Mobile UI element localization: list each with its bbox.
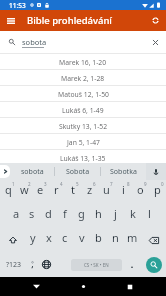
button[interactable]: Marek 16, 1-20 [0, 54, 166, 70]
staticText: Marek 2, 1-28 [61, 74, 105, 83]
staticText: Matouš 12, 1-50 [58, 90, 109, 99]
staticText: f [63, 206, 67, 221]
staticText: Bible prohledávání [27, 14, 112, 27]
staticText: sobota [22, 37, 47, 47]
staticText: Sobotka [110, 167, 137, 177]
staticText: w [20, 182, 29, 197]
staticText: l [148, 206, 151, 221]
button[interactable]: a [8, 204, 24, 228]
button[interactable]: k [124, 204, 141, 228]
button[interactable]: Clear search [144, 31, 166, 53]
button[interactable]: Marek 2, 1-28 [0, 70, 166, 86]
button[interactable]: s [24, 204, 40, 228]
staticText: c [62, 230, 68, 245]
button[interactable]: j [107, 204, 124, 228]
button[interactable]: x [41, 228, 57, 252]
button[interactable]: Backspace [141, 228, 166, 252]
staticText: n [112, 230, 119, 245]
button[interactable]: Matouš 12, 1-50 [0, 86, 166, 102]
button[interactable] [27, 252, 37, 277]
button[interactable]: q [0, 180, 16, 204]
staticText: sobota [21, 167, 44, 177]
staticText: x [46, 230, 52, 245]
staticText: Skutky 13, 1-52 [59, 122, 108, 131]
staticText: CS • SK • EN [84, 262, 109, 268]
button[interactable]: CS • SK • EN [71, 259, 122, 271]
staticText: 1 [12, 181, 15, 187]
button[interactable] [122, 252, 142, 277]
button[interactable]: Refresh [145, 10, 166, 31]
staticText: i [122, 182, 125, 197]
button[interactable]: v [73, 228, 90, 252]
button[interactable]: Lukáš 6, 1-49 [0, 102, 166, 118]
staticText: d [45, 206, 52, 221]
staticText: 9 [144, 181, 147, 187]
staticText: 11:53 [9, 1, 26, 10]
button[interactable]: t [64, 180, 81, 204]
button[interactable]: i [115, 180, 132, 204]
staticText: Jan 5, 1-47 [67, 138, 100, 147]
button[interactable]: Recent apps [120, 277, 139, 296]
staticText: 7 [110, 181, 113, 187]
staticText: 8 [127, 181, 130, 187]
button[interactable]: Sobotka [101, 163, 146, 180]
button[interactable]: Back [27, 277, 46, 296]
staticText: h [95, 206, 102, 221]
button[interactable]: c [57, 228, 73, 252]
button[interactable]: g [73, 204, 90, 228]
staticText: e [37, 182, 44, 197]
staticText: 3 [44, 181, 47, 187]
staticText: m [127, 230, 138, 245]
staticText: z [87, 182, 93, 197]
button[interactable]: d [40, 204, 56, 228]
button[interactable]: u [98, 180, 115, 204]
button[interactable]: Home [74, 277, 93, 296]
staticText: q [5, 182, 12, 197]
button[interactable]: h [90, 204, 107, 228]
staticText: ?123 [6, 260, 22, 270]
staticText: b [95, 230, 102, 245]
staticText: Lukáš 6, 1-49 [62, 106, 104, 115]
button[interactable]: f [56, 204, 73, 228]
staticText: u [103, 182, 110, 197]
button[interactable]: Voice input [146, 163, 166, 180]
button[interactable]: l [141, 204, 158, 228]
button[interactable]: Navigation menu [0, 10, 21, 31]
button[interactable]: Skutky 13, 1-52 [0, 118, 166, 134]
button[interactable]: Shift [0, 228, 25, 252]
button[interactable]: n [107, 228, 124, 252]
staticText: r [54, 182, 59, 197]
button[interactable]: p [149, 180, 166, 204]
staticText: p [154, 182, 161, 197]
staticText: o [137, 182, 144, 197]
staticText: a [13, 206, 20, 221]
button[interactable]: w [16, 180, 32, 204]
staticText: j [114, 206, 117, 221]
staticText: Marek 16, 1-20 [59, 58, 107, 67]
button[interactable]: Search [142, 252, 166, 277]
button[interactable]: Jan 5, 1-47 [0, 134, 166, 150]
staticText: y [30, 230, 36, 245]
staticText: g [78, 206, 85, 221]
staticText: k [130, 206, 136, 221]
button[interactable]: b [90, 228, 107, 252]
button[interactable]: Switch language [37, 252, 55, 277]
button[interactable]: sobota [10, 163, 54, 180]
staticText: 2 [28, 181, 31, 187]
button[interactable]: Sobota [55, 163, 100, 180]
staticText: t [71, 182, 75, 197]
staticText: Sobota [66, 167, 90, 177]
button[interactable]: z [81, 180, 98, 204]
staticText: 0 [161, 181, 164, 187]
staticText: s [29, 206, 35, 221]
button[interactable]: e [32, 180, 48, 204]
staticText: 5 [76, 181, 79, 187]
staticText: Lukáš 13, 1-35 [60, 154, 106, 163]
button[interactable]: More suggestions [0, 165, 10, 178]
button[interactable]: r [48, 180, 64, 204]
button[interactable]: ?123 [0, 252, 27, 277]
button[interactable]: m [124, 228, 141, 252]
button[interactable]: y [25, 228, 41, 252]
button[interactable]: Lukáš 13, 1-35 [0, 150, 166, 166]
button[interactable]: o [132, 180, 149, 204]
